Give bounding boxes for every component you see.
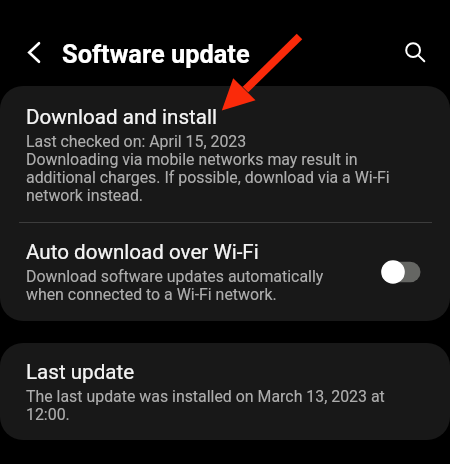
staticText: Auto download over Wi-Fi: [26, 240, 259, 264]
button[interactable]: Last update: [0, 343, 450, 424]
button[interactable]: Download and install: [0, 86, 450, 222]
staticText: Last update: [26, 360, 135, 384]
button[interactable]: Search: [397, 34, 429, 66]
staticText: Download software updates automatically …: [26, 268, 338, 304]
staticText: Download and install: [26, 105, 218, 129]
staticText: Last checked on: April 15, 2023 Download…: [26, 133, 412, 205]
staticText: Software update: [62, 39, 250, 69]
staticText: The last update was installed on March 1…: [26, 388, 412, 424]
button[interactable]: Auto download over Wi-Fi: [0, 223, 450, 318]
button[interactable]: Navigate up: [14, 33, 46, 71]
button[interactable]: Auto download over Wi-Fi toggle: [381, 259, 421, 285]
